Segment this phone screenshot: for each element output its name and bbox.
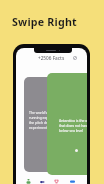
button[interactable]: Shuffle xyxy=(72,55,78,61)
button[interactable]: Explore xyxy=(38,177,46,184)
button[interactable]: Antarctica is the only continent that do… xyxy=(47,73,87,175)
button[interactable]: Library xyxy=(68,177,76,184)
staticText: Antarctica is the only continent that do… xyxy=(59,118,87,133)
button[interactable]: The world's longest-running experiment i… xyxy=(24,77,80,172)
button[interactable]: Home xyxy=(24,177,32,184)
staticText: The world's longest-running experiment i… xyxy=(29,110,65,130)
button[interactable]: Favourites xyxy=(52,177,60,184)
staticText: Swipe Right xyxy=(12,15,77,30)
staticText: +2506 Facts xyxy=(38,55,65,61)
